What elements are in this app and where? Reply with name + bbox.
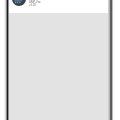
button[interactable]: GMP-Voz logo — [12, 0, 26, 6]
button[interactable]: v3.08 — [29, 3, 36, 7]
button[interactable]: GMP-Voz — [29, 0, 41, 4]
staticText: v3.08 — [29, 3, 36, 7]
staticText: GMP-Voz — [29, 0, 41, 4]
button[interactable]: App bar — [8, 0, 111, 13]
